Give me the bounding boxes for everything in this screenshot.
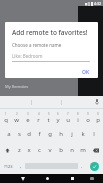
staticText: e (26, 116, 30, 124)
staticText: m (80, 146, 86, 154)
button[interactable]: 1 (0, 109, 11, 126)
staticText: u (66, 116, 70, 124)
staticText: 8 (77, 112, 79, 116)
staticText: 0 (97, 112, 99, 116)
staticText: 4:32 (94, 1, 101, 6)
staticText: c (38, 146, 41, 154)
staticText: 1 (5, 112, 7, 116)
button[interactable]: x (24, 142, 34, 158)
staticText: n (70, 146, 74, 154)
staticText: Like: Bedroom (12, 53, 43, 59)
staticText: My Remotes (5, 84, 29, 89)
button[interactable]: Voice input (91, 96, 103, 108)
staticText: h (59, 130, 63, 138)
button[interactable]: Home (40, 174, 55, 183)
staticText: o (86, 116, 90, 124)
staticText: 3 (27, 112, 29, 116)
button[interactable]: d (24, 126, 34, 142)
staticText: . (81, 163, 83, 169)
staticText: 6 (57, 112, 59, 116)
button[interactable]: c (34, 142, 44, 158)
staticText: 7 (67, 112, 69, 116)
staticText: p (96, 116, 100, 124)
button[interactable]: 8 (73, 109, 83, 126)
staticText: k (81, 130, 85, 138)
button[interactable]: 3 (22, 109, 33, 126)
staticText: f (38, 130, 41, 138)
button[interactable]: 6 (53, 109, 63, 126)
button[interactable]: Enter (86, 158, 103, 174)
staticText: 4 (38, 112, 40, 116)
button[interactable]: j (66, 126, 77, 142)
button[interactable]: k (77, 126, 88, 142)
button[interactable]: OK (79, 68, 93, 77)
button[interactable]: a (4, 126, 14, 142)
button[interactable]: 5 (43, 109, 53, 126)
button[interactable]: . (78, 158, 86, 174)
button[interactable] (31, 96, 61, 108)
staticText: 2 (16, 112, 18, 116)
staticText: d (27, 130, 31, 138)
staticText: OK (82, 69, 90, 76)
staticText: y (56, 116, 60, 124)
button[interactable]: Recents (65, 174, 80, 183)
staticText: a (7, 130, 11, 138)
button[interactable]: h (55, 126, 66, 142)
button[interactable]: b (55, 142, 66, 158)
button[interactable]: Backspace (88, 142, 103, 158)
staticText: v (48, 146, 52, 154)
button[interactable]: ?123 (0, 158, 17, 174)
button[interactable]: s (14, 126, 24, 142)
button[interactable]: Hide keyboard (84, 174, 99, 183)
button[interactable]: f (34, 126, 44, 142)
staticText: t (47, 116, 50, 124)
staticText: b (59, 146, 63, 154)
staticText: r (37, 116, 40, 124)
button[interactable]: z (14, 142, 24, 158)
staticText: s (18, 130, 21, 138)
button[interactable] (61, 96, 91, 108)
staticText: w (14, 116, 19, 124)
button[interactable]: n (66, 142, 77, 158)
staticText: 5 (48, 112, 50, 116)
staticText: x (27, 146, 31, 154)
staticText: j (71, 130, 73, 138)
staticText: Add remote to favorites! (12, 28, 88, 37)
button[interactable]: g (44, 126, 55, 142)
staticText: z (18, 146, 21, 154)
button[interactable]: Space (25, 162, 78, 170)
staticText: l (93, 130, 95, 138)
button[interactable]: l (88, 126, 99, 142)
button[interactable]: m (77, 142, 88, 158)
button[interactable]: 9 (83, 109, 93, 126)
staticText: q (4, 116, 8, 124)
staticText: , (20, 163, 22, 169)
staticText: ?123 (4, 164, 13, 169)
button[interactable]: Back (15, 174, 30, 183)
staticText: g (48, 130, 52, 138)
button[interactable]: v (44, 142, 55, 158)
button[interactable]: 2 (11, 109, 22, 126)
button[interactable]: 0 (93, 109, 103, 126)
staticText: 9 (87, 112, 89, 116)
staticText: Choose a remote name (12, 42, 62, 48)
staticText: i (77, 116, 79, 124)
button[interactable]: Shift (0, 142, 14, 158)
button[interactable]: , (17, 158, 25, 174)
button[interactable]: 7 (63, 109, 73, 126)
button[interactable]: 4 (33, 109, 43, 126)
